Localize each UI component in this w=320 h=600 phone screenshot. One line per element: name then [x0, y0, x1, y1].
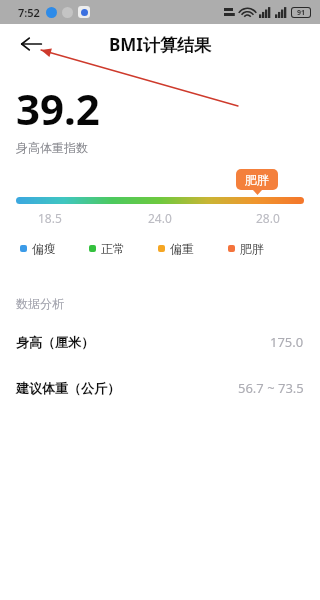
staticText: 56.7 ~ 73.5: [238, 379, 304, 397]
staticText: 18.5: [38, 210, 62, 226]
staticText: 数据分析: [16, 296, 64, 311]
staticText: BMI计算结果: [109, 33, 211, 56]
staticText: 偏重: [170, 241, 194, 256]
staticText: 肥胖: [245, 172, 269, 187]
staticText: 24.0: [148, 210, 172, 226]
staticText: 175.0: [270, 333, 304, 351]
staticText: 正常: [101, 241, 125, 256]
staticText: 39.2: [16, 80, 100, 137]
button[interactable]: 身高（厘米）: [16, 333, 304, 351]
staticText: 偏瘦: [32, 241, 56, 256]
staticText: 7:52: [18, 5, 40, 20]
button[interactable]: 返回: [12, 25, 50, 63]
staticText: 建议体重（公斤）: [16, 380, 120, 396]
button[interactable]: 建议体重（公斤）: [16, 379, 304, 397]
staticText: 身高体重指数: [16, 140, 88, 155]
staticText: 91: [297, 8, 306, 17]
staticText: 28.0: [256, 210, 280, 226]
staticText: 肥胖: [240, 241, 264, 256]
staticText: 身高（厘米）: [16, 334, 94, 350]
